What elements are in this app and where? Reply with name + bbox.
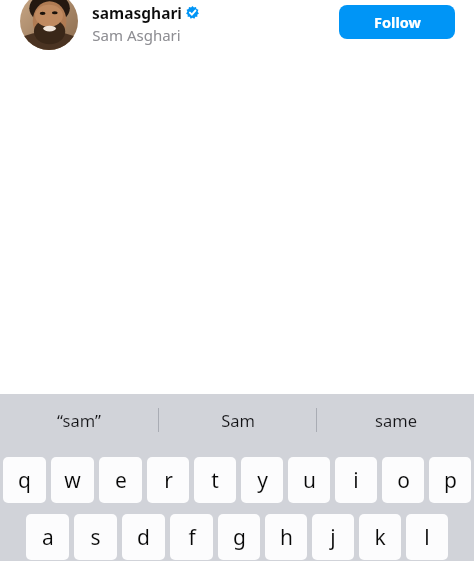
staticText: same [375, 409, 417, 431]
button[interactable]: samasghari [92, 2, 199, 45]
button[interactable]: j [312, 514, 354, 560]
staticText: g [233, 523, 246, 552]
staticText: l [424, 523, 430, 552]
staticText: j [330, 523, 336, 552]
staticText: f [188, 523, 196, 552]
staticText: w [64, 466, 81, 495]
staticText: samasghari [92, 2, 182, 23]
staticText: Sam [221, 409, 255, 431]
button[interactable]: r [147, 457, 189, 503]
staticText: q [18, 466, 31, 495]
button[interactable]: i [335, 457, 377, 503]
other: Verified [186, 6, 199, 19]
staticText: s [90, 523, 101, 552]
button[interactable]: d [122, 514, 165, 560]
staticText: u [303, 466, 316, 495]
staticText: t [211, 466, 219, 495]
staticText: r [164, 466, 173, 495]
staticText: p [444, 466, 457, 495]
button[interactable]: q [3, 457, 46, 503]
staticText: “sam” [57, 409, 101, 431]
button[interactable]: t [194, 457, 236, 503]
staticText: i [353, 466, 359, 495]
staticText: a [42, 523, 54, 552]
button[interactable]: l [406, 514, 448, 560]
button[interactable]: e [99, 457, 142, 503]
staticText: y [257, 466, 268, 495]
button[interactable]: o [382, 457, 424, 503]
staticText: k [374, 523, 386, 552]
button[interactable]: a [26, 514, 69, 560]
button[interactable]: “sam” [0, 394, 158, 446]
button[interactable]: p [429, 457, 471, 503]
staticText: o [397, 466, 410, 495]
button[interactable]: Follow [339, 5, 455, 39]
button[interactable]: Profile photo [20, 0, 78, 50]
button[interactable]: f [170, 514, 213, 560]
staticText: Sam Asghari [92, 25, 181, 45]
button[interactable]: k [359, 514, 401, 560]
button[interactable]: same [317, 394, 474, 446]
button[interactable]: y [241, 457, 283, 503]
button[interactable]: w [51, 457, 94, 503]
staticText: Follow [374, 12, 421, 32]
button[interactable]: u [288, 457, 330, 503]
button[interactable]: g [218, 514, 260, 560]
staticText: h [280, 523, 293, 552]
button[interactable]: s [74, 514, 117, 560]
button[interactable]: Sam [159, 394, 316, 446]
staticText: d [137, 523, 150, 552]
button[interactable]: h [265, 514, 307, 560]
staticText: e [115, 466, 127, 495]
